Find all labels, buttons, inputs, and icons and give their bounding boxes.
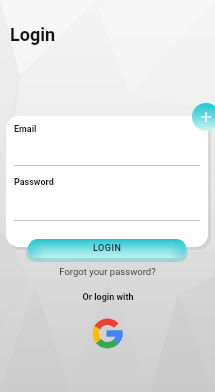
- staticText: Password: [14, 177, 54, 188]
- staticText: Or login with: [82, 292, 134, 303]
- staticText: Email: [14, 124, 37, 135]
- button[interactable]: Email: [14, 124, 37, 135]
- button[interactable]: Forgot your password?: [0, 264, 215, 278]
- button[interactable]: [92, 318, 123, 349]
- button[interactable]: [192, 103, 215, 131]
- staticText: Login: [10, 24, 56, 45]
- button[interactable]: Password: [14, 177, 54, 188]
- button[interactable]: LOGIN: [28, 239, 186, 258]
- staticText: Forgot your password?: [59, 266, 156, 277]
- staticText: LOGIN: [93, 243, 122, 254]
